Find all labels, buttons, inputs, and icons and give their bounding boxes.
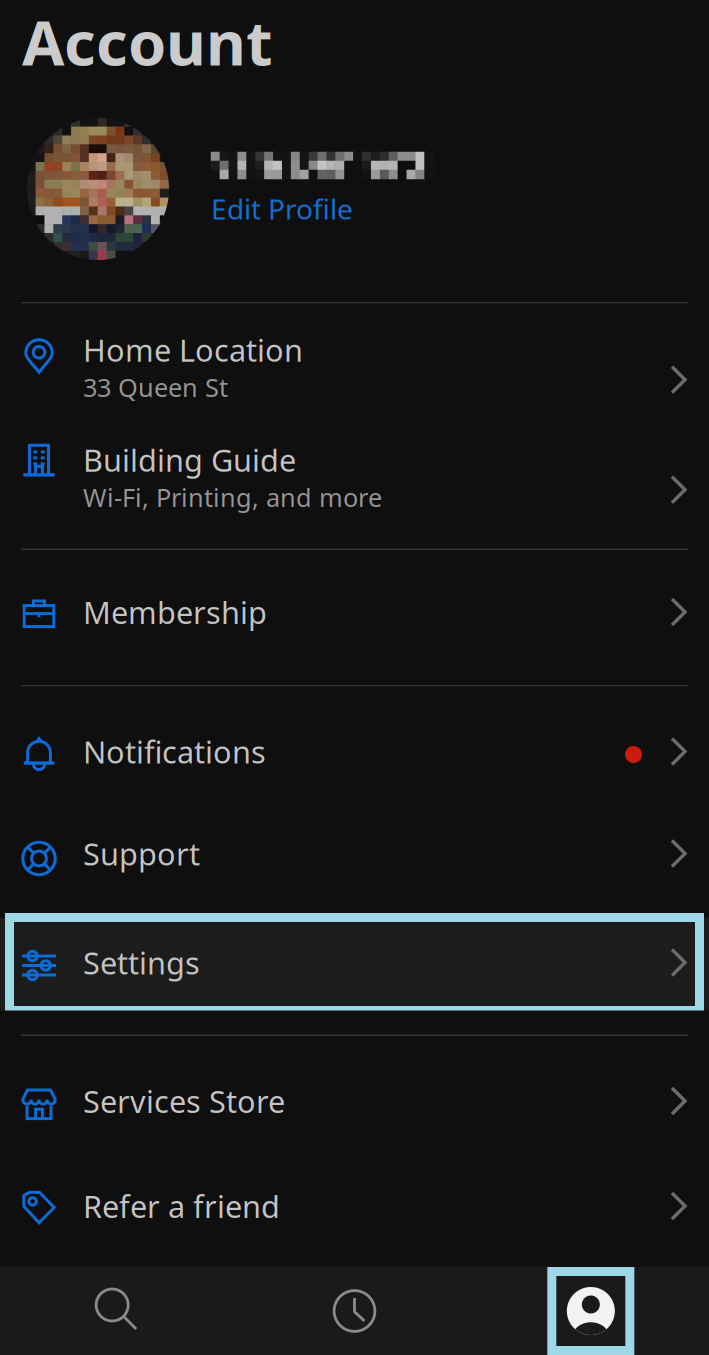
button[interactable]: Search (0, 1267, 236, 1355)
button[interactable]: Recents (236, 1267, 473, 1355)
staticText: Settings (83, 942, 200, 983)
button[interactable]: Refer a friend (0, 1141, 709, 1246)
button[interactable]: Building Guide (0, 413, 709, 523)
staticText: Refer a friend (83, 1186, 280, 1226)
button[interactable]: Edit Profile (211, 190, 353, 227)
staticText: Services Store (83, 1081, 285, 1121)
staticText: Membership (83, 592, 267, 632)
button[interactable]: Membership (0, 550, 709, 685)
staticText: Wi-Fi, Printing, and more (83, 480, 382, 514)
button[interactable]: Settings (0, 917, 709, 1010)
staticText: Edit Profile (211, 190, 353, 227)
button[interactable]: Services Store (0, 1036, 709, 1141)
button[interactable]: Support (0, 789, 709, 917)
staticText: Home Location (83, 329, 303, 370)
button[interactable]: Account (473, 1267, 709, 1355)
staticText: Account (22, 1, 273, 82)
staticText: Building Guide (83, 439, 296, 480)
staticText: Notifications (83, 731, 266, 772)
button[interactable]: Home Location (0, 303, 709, 413)
button[interactable]: Notifications (0, 686, 709, 789)
staticText: Support (83, 833, 200, 874)
staticText: 33 Queen St (83, 370, 228, 404)
